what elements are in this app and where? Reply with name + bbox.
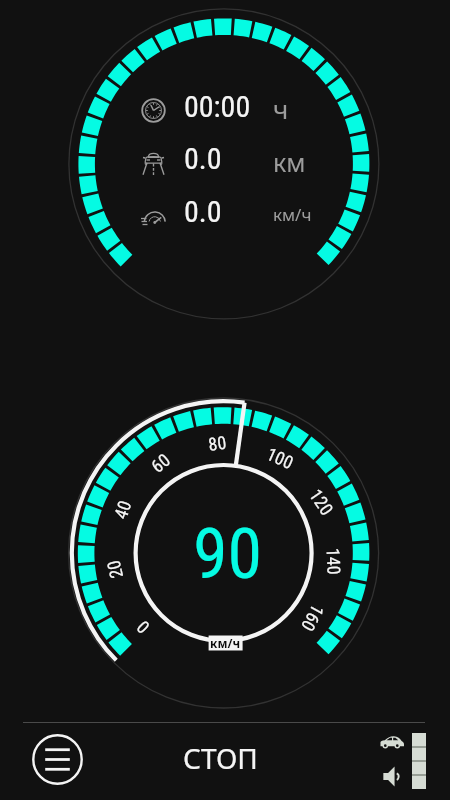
- button[interactable]: Car mode: [380, 735, 404, 749]
- staticText: км: [273, 145, 306, 179]
- button[interactable]: Menu: [32, 734, 83, 785]
- staticText: км/ч: [273, 203, 312, 226]
- staticText: 0.0: [184, 141, 222, 176]
- button[interactable]: СТОП: [183, 739, 258, 777]
- button[interactable]: Volume level: [412, 733, 426, 789]
- staticText: 0.0: [184, 194, 222, 229]
- button[interactable]: Sound: [383, 766, 400, 787]
- staticText: СТОП: [183, 739, 258, 777]
- staticText: 00:00: [184, 89, 251, 124]
- staticText: ч: [273, 91, 289, 126]
